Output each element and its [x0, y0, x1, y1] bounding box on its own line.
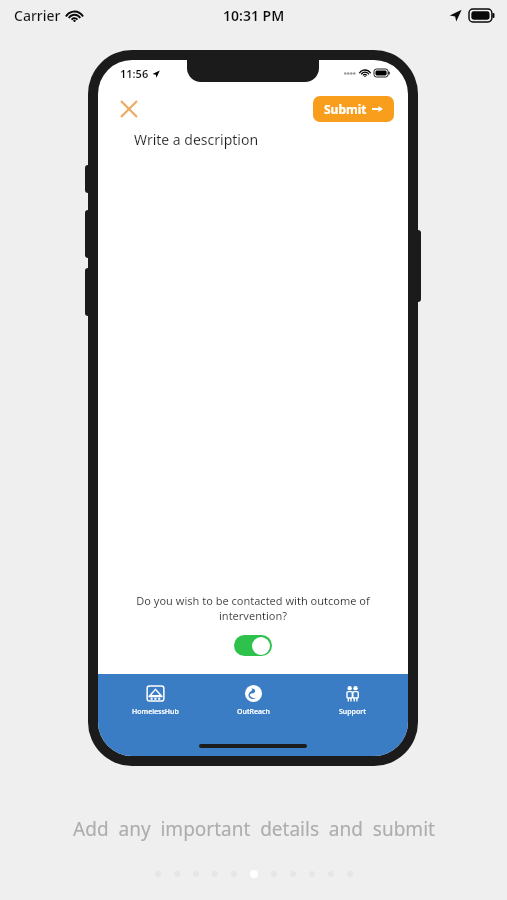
staticText: Carrier — [14, 6, 61, 25]
staticText: Support — [339, 707, 366, 717]
staticText: Write a description — [134, 130, 259, 149]
staticText: 10:31 PM — [223, 6, 285, 25]
staticText: HomelessHub — [132, 707, 179, 717]
staticText: OutReach — [237, 707, 270, 717]
staticText: Do you wish to be contacted with outcome… — [118, 593, 388, 623]
button[interactable]: Support — [310, 682, 394, 719]
staticText: 11:56 — [120, 66, 149, 81]
button[interactable]: HomelessHub — [113, 682, 197, 719]
button[interactable]: OutReach — [211, 682, 295, 719]
button[interactable]: Submit — [313, 96, 394, 122]
button[interactable]: Close — [114, 94, 144, 124]
button[interactable]: Contact me toggle — [234, 635, 272, 656]
button[interactable]: Page 6 — [250, 870, 258, 878]
staticText: Add any important details and submit — [73, 816, 435, 842]
staticText: Submit — [324, 101, 367, 117]
